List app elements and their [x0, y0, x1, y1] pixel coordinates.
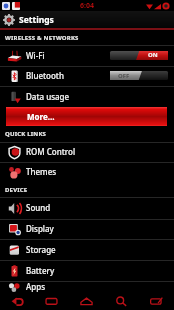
button[interactable]: Data usage — [0, 87, 174, 107]
button[interactable]: Settings — [0, 11, 174, 28]
button[interactable]: More… — [6, 107, 167, 126]
button[interactable]: Menu — [139, 293, 174, 310]
button[interactable]: Bluetooth — [0, 67, 174, 86]
staticText: Apps — [26, 281, 46, 292]
button[interactable]: Sound — [0, 198, 174, 219]
button[interactable]: Wi-Fi — [0, 46, 174, 66]
staticText: Sound — [26, 202, 51, 213]
staticText: Settings — [19, 14, 54, 26]
staticText: Display — [26, 223, 54, 234]
staticText: ROM Control — [26, 146, 76, 157]
button[interactable]: Themes — [0, 163, 174, 182]
button[interactable] — [110, 51, 168, 60]
staticText: Data usage — [26, 91, 70, 102]
button[interactable]: ROM Control — [0, 143, 174, 162]
button[interactable]: Recent apps — [34, 293, 69, 310]
staticText: WIRELESS & NETWORKS — [5, 34, 79, 42]
staticText: ON — [148, 51, 158, 59]
button[interactable]: Battery — [0, 261, 174, 281]
button[interactable]: Apps — [0, 282, 174, 293]
button[interactable]: Display — [0, 220, 174, 239]
staticText: Bluetooth — [26, 70, 64, 81]
button[interactable] — [110, 71, 168, 80]
staticText: 6:04 — [80, 1, 94, 11]
staticText: OFF — [118, 72, 130, 80]
staticText: More… — [27, 111, 55, 122]
staticText: DEVICE — [5, 186, 28, 194]
button[interactable]: Storage — [0, 240, 174, 260]
button[interactable]: Home — [69, 293, 104, 310]
button[interactable]: Search — [104, 293, 139, 310]
staticText: QUICK LINKS — [5, 130, 47, 138]
staticText: Themes — [26, 166, 57, 177]
staticText: Storage — [26, 244, 56, 255]
staticText: Battery — [26, 265, 55, 276]
button[interactable]: Back — [0, 293, 34, 310]
staticText: Wi-Fi — [26, 50, 45, 61]
